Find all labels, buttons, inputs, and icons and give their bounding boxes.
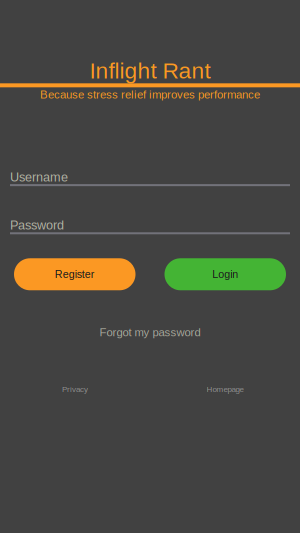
button[interactable]: Login (164, 258, 286, 290)
staticText: Username (10, 170, 68, 184)
button[interactable]: Password (0, 218, 300, 234)
staticText: Privacy (62, 385, 88, 394)
staticText: Homepage (206, 385, 243, 394)
staticText: Register (55, 268, 95, 280)
staticText: Because stress relief improves performan… (40, 88, 260, 101)
button[interactable]: Homepage (150, 382, 300, 396)
staticText: Inflight Rant (89, 58, 210, 83)
button[interactable]: Register (14, 258, 135, 290)
button[interactable]: Forgot my password (0, 324, 300, 340)
staticText: Login (212, 268, 238, 280)
staticText: Password (10, 218, 64, 232)
button[interactable]: Privacy (0, 382, 150, 396)
button[interactable]: Username (0, 170, 300, 186)
staticText: Forgot my password (99, 326, 200, 339)
